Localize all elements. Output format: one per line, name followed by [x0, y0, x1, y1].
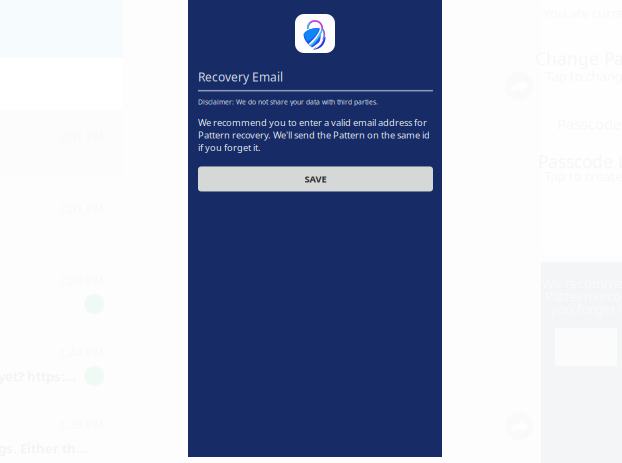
staticText: Disclaimer: We do not share your data wi…	[198, 97, 378, 106]
button[interactable]: SAVE	[198, 166, 433, 191]
staticText: gs. Either th…	[0, 439, 87, 457]
staticText: Recovery Email	[198, 69, 283, 85]
staticText: SAVE	[304, 173, 326, 185]
staticText: We recommend you to enter a valid email …	[198, 116, 430, 153]
staticText: yet? https:…	[0, 367, 76, 385]
